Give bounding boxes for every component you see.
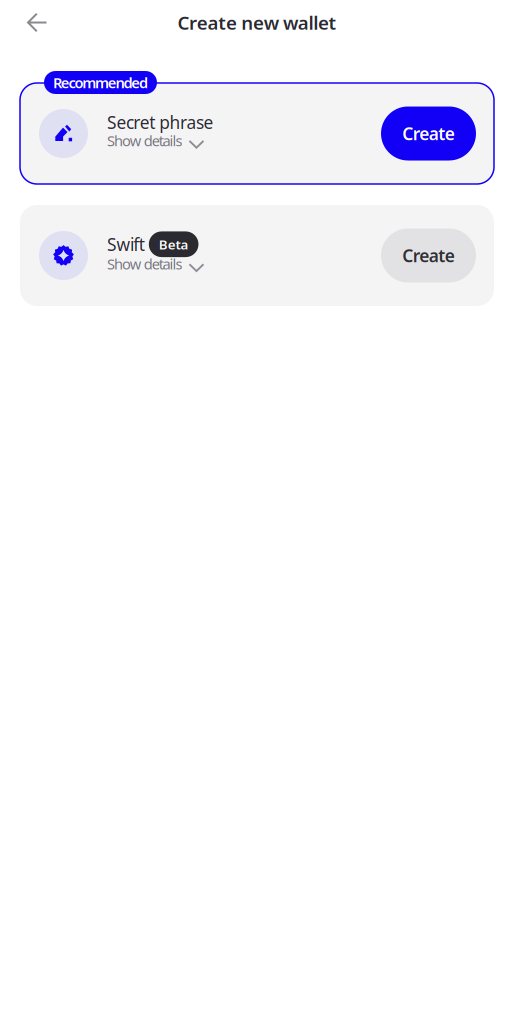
staticText: Swift [107, 233, 145, 256]
button[interactable]: Back [17, 2, 57, 42]
staticText: Create [402, 244, 455, 267]
staticText: Secret phrase [107, 111, 213, 134]
button[interactable]: Create [381, 228, 476, 282]
staticText: Show details [107, 254, 182, 274]
button[interactable]: Secret phrase [20, 83, 494, 184]
staticText: Recommended [53, 73, 148, 92]
staticText: Show details [107, 131, 182, 150]
staticText: Beta [159, 235, 188, 253]
button[interactable]: Swift [20, 205, 494, 306]
staticText: Create new wallet [177, 10, 337, 35]
button[interactable]: Create [381, 106, 476, 160]
staticText: Create [402, 122, 455, 145]
